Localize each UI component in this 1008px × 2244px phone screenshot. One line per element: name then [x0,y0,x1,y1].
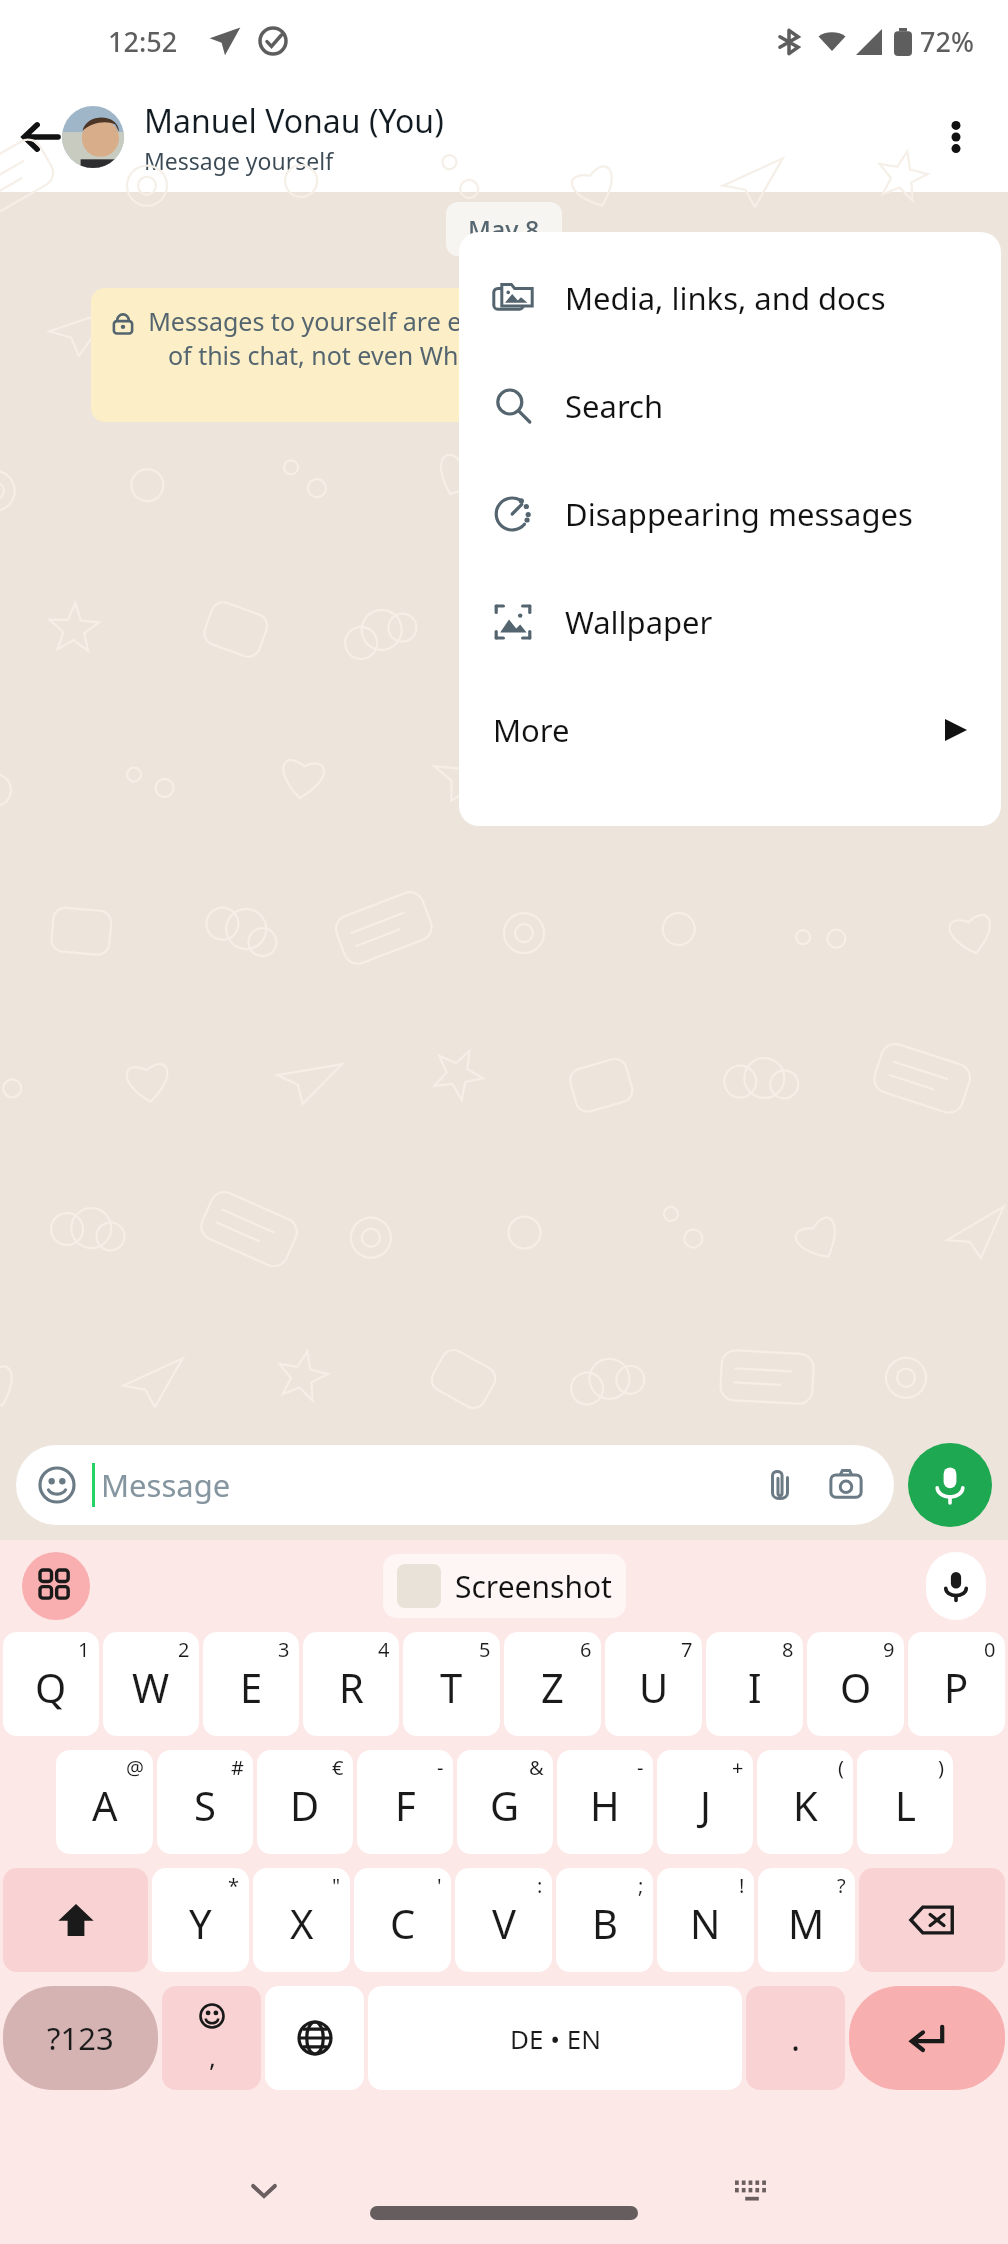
button[interactable]: More options [920,101,992,173]
staticText: U [639,1660,669,1714]
staticText: " [332,1872,341,1899]
button[interactable]: Voice input [926,1552,986,1620]
staticText: W [132,1660,170,1714]
staticText: ) [938,1754,944,1781]
button[interactable]: Toolbar [22,1552,90,1620]
button[interactable]: DE • EN [368,1986,742,2090]
staticText: L [895,1778,916,1832]
staticText: Z [541,1660,564,1714]
staticText: C [390,1896,416,1950]
button[interactable]: Screenshot [383,1554,626,1618]
staticText: ? [837,1872,846,1899]
staticText: K [793,1778,818,1832]
button[interactable]: Wallpaper [459,568,1001,676]
staticText: O [840,1660,872,1714]
staticText: 5 [479,1636,491,1663]
button[interactable]: Voice message [908,1443,992,1527]
button[interactable]: Attach [754,1459,806,1511]
button[interactable]: Message [16,1445,894,1525]
button[interactable]: ' [354,1868,451,1972]
button[interactable]: ; [556,1868,653,1972]
button[interactable]: 2 [103,1632,199,1736]
button[interactable]: ! [657,1868,754,1972]
button[interactable]: Search [459,352,1001,460]
staticText: € [332,1754,344,1781]
button[interactable]: Change language [265,1986,364,2090]
button[interactable]: May 8 [446,202,562,256]
button[interactable]: 3 [203,1632,299,1736]
staticText: Y [189,1896,212,1950]
staticText: P [944,1660,969,1714]
staticText: - [437,1754,444,1781]
button[interactable]: € [257,1750,353,1854]
button[interactable]: - [357,1750,453,1854]
staticText: B [592,1896,618,1950]
button[interactable]: Shift [3,1868,148,1972]
button[interactable]: Emoji [162,1986,261,2090]
button[interactable]: : [455,1868,552,1972]
button[interactable]: 0 [908,1632,1005,1736]
button[interactable]: 5 [403,1632,500,1736]
button[interactable]: Backspace [859,1868,1005,1972]
staticText: 3 [278,1636,290,1663]
staticText: A [92,1778,118,1832]
staticText: I [748,1660,762,1714]
button[interactable]: 1 [3,1632,99,1736]
button[interactable]: @ [56,1750,153,1854]
staticText: R [339,1660,364,1714]
staticText: ' [437,1872,442,1899]
button[interactable]: - [557,1750,653,1854]
button[interactable]: Media, links, and docs [459,244,1001,352]
button[interactable]: 4 [303,1632,399,1736]
button[interactable]: Camera [820,1459,872,1511]
staticText: E [240,1660,263,1714]
button[interactable]: 6 [504,1632,601,1736]
button[interactable]: Hide keyboard [232,2158,296,2222]
button[interactable]: 9 [807,1632,904,1736]
staticText: X [290,1896,314,1950]
button[interactable]: # [157,1750,253,1854]
button[interactable]: ?123 [3,1986,158,2090]
staticText: Manuel Vonau (You) [144,99,444,143]
staticText: 72% [920,23,974,60]
staticText: More [493,709,570,751]
button[interactable]: More [459,676,1001,784]
staticText: G [490,1778,520,1832]
button[interactable]: 7 [605,1632,702,1736]
staticText: Screenshot [455,1566,612,1607]
staticText: 8 [782,1636,794,1663]
button[interactable]: + [657,1750,753,1854]
staticText: 9 [883,1636,895,1663]
staticText: , [209,2039,216,2074]
staticText: 1 [78,1636,90,1663]
button[interactable]: Back [8,104,74,170]
staticText: H [590,1778,620,1832]
staticText: ?123 [47,2017,114,2059]
button[interactable]: . [746,1986,845,2090]
staticText: @ [126,1754,144,1781]
staticText: S [194,1778,216,1832]
button[interactable]: Enter [849,1986,1005,2090]
button[interactable]: Switch keyboard [720,2158,784,2222]
button[interactable]: Messages to yourself are end-to-end encr… [91,288,918,422]
button[interactable]: ( [757,1750,853,1854]
button[interactable]: Manuel Vonau (You) [62,82,444,192]
button[interactable]: Disappearing messages [459,460,1001,568]
staticText: ( [838,1754,844,1781]
button[interactable]: * [152,1868,249,1972]
staticText: # [231,1754,244,1781]
staticText: May 8 [468,212,540,246]
staticText: Message yourself [144,145,334,176]
staticText: V [492,1896,516,1950]
button[interactable]: & [457,1750,553,1854]
staticText: DE • EN [510,2021,601,2056]
button[interactable]: 8 [706,1632,803,1736]
button[interactable]: " [253,1868,350,1972]
staticText: F [395,1778,416,1832]
staticText: T [440,1660,463,1714]
staticText: 0 [984,1636,996,1663]
button[interactable]: ? [758,1868,855,1972]
staticText: Messages to yourself are end-to-end encr… [145,304,898,406]
button[interactable]: ) [857,1750,953,1854]
staticText: . [791,2015,801,2061]
